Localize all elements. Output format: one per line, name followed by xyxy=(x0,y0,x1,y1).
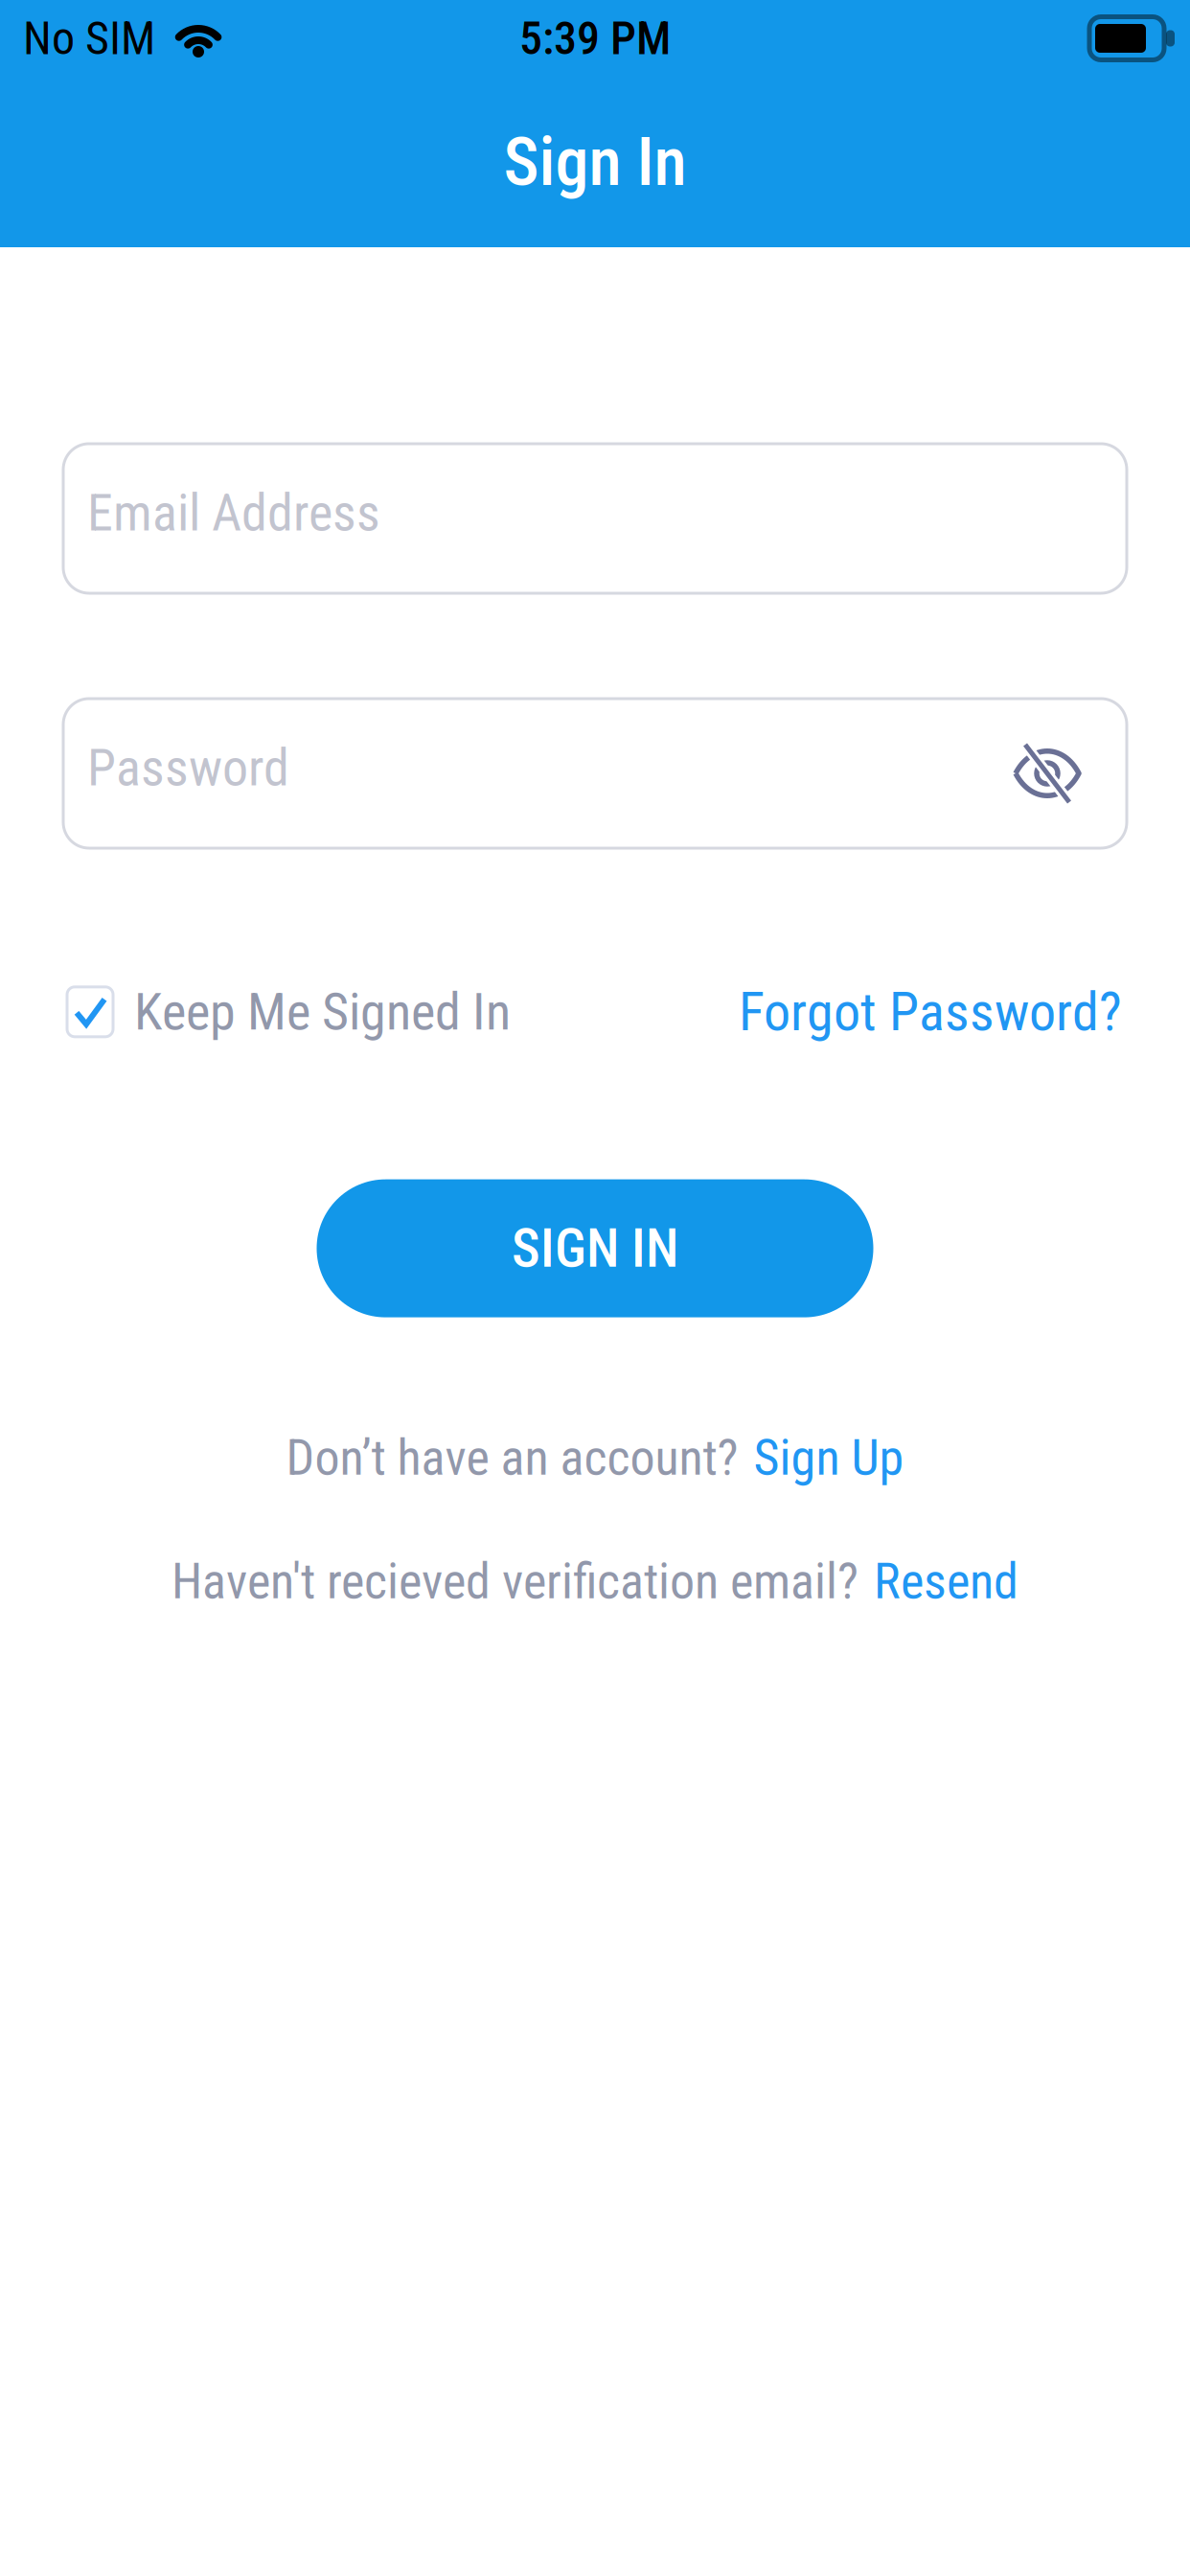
button[interactable]: SIGN IN xyxy=(317,1179,873,1317)
staticText: Resend xyxy=(874,1552,1018,1610)
staticText: Sign Up xyxy=(754,1428,904,1487)
button[interactable]: Forgot Password? xyxy=(739,980,1122,1043)
button[interactable]: Resend xyxy=(874,1552,1018,1610)
staticText: Haven't recieved verification email? xyxy=(172,1552,858,1610)
button[interactable] xyxy=(1013,745,1082,802)
staticText: Sign In xyxy=(503,123,687,201)
staticText: Keep Me Signed In xyxy=(134,982,511,1042)
button[interactable]: Sign Up xyxy=(754,1428,904,1487)
staticText: Email Address xyxy=(87,482,380,543)
button[interactable]: Email Address xyxy=(63,444,1127,593)
button[interactable]: Keep Me Signed In xyxy=(67,982,511,1042)
staticText: Forgot Password? xyxy=(739,980,1122,1043)
button[interactable]: Password xyxy=(63,699,1127,848)
staticText: Password xyxy=(87,737,289,798)
staticText: No SIM xyxy=(23,11,155,65)
staticText: SIGN IN xyxy=(512,1217,678,1280)
staticText: 5:39 PM xyxy=(519,11,671,65)
staticText: Don’t have an account? xyxy=(286,1428,738,1487)
